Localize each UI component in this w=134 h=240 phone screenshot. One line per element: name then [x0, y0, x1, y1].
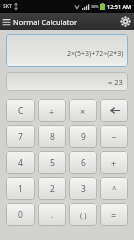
button[interactable]: × [69, 99, 97, 122]
staticText: 12:51 AM [107, 3, 132, 10]
button[interactable]: 9 [69, 125, 97, 148]
staticText: 9 [81, 131, 86, 143]
button[interactable]: 2 [38, 177, 66, 200]
staticText: . [51, 209, 54, 221]
staticText: 38% [91, 4, 99, 9]
button[interactable]: 2×(5+3)+72÷(2*3) [6, 34, 128, 67]
staticText: 6 [81, 157, 86, 169]
button[interactable]: . [38, 203, 66, 226]
staticText: ÷ [49, 105, 55, 117]
staticText: + [111, 157, 117, 169]
staticText: × [80, 105, 86, 117]
button[interactable]: ^ [100, 177, 128, 200]
staticText: Normal Calculator [13, 17, 78, 27]
staticText: 1 [18, 183, 23, 195]
button[interactable]: = [100, 203, 128, 226]
button[interactable]: ( ) [69, 203, 97, 226]
staticText: 2×(5+3)+72÷(2*3) [67, 49, 124, 59]
staticText: 2 [50, 183, 55, 195]
button[interactable]: 3 [69, 177, 97, 200]
button[interactable]: Backspace [100, 99, 128, 122]
staticText: 4 [18, 157, 23, 169]
button[interactable]: = 23 [6, 72, 128, 91]
staticText: 5 [50, 157, 55, 169]
button[interactable]: C [6, 99, 35, 122]
staticText: C [18, 105, 24, 117]
staticText: − [111, 131, 117, 143]
button[interactable]: 4 [6, 151, 35, 174]
button[interactable]: Navigation menu [0, 13, 13, 30]
button[interactable]: − [100, 125, 128, 148]
button[interactable]: Settings [116, 13, 134, 30]
button[interactable]: 0 [6, 203, 35, 226]
staticText: SKT [3, 3, 12, 10]
button[interactable]: 7 [6, 125, 35, 148]
button[interactable]: 6 [69, 151, 97, 174]
staticText: 8 [50, 131, 55, 143]
button[interactable]: + [100, 151, 128, 174]
staticText: = 23 [108, 77, 123, 87]
button[interactable]: ÷ [38, 99, 66, 122]
button[interactable]: 1 [6, 177, 35, 200]
staticText: 3 [81, 183, 86, 195]
staticText: ^ [112, 183, 117, 194]
staticText: 7 [18, 131, 23, 143]
staticText: 0 [18, 209, 23, 221]
button[interactable]: 8 [38, 125, 66, 148]
staticText: = [111, 209, 117, 221]
button[interactable]: 5 [38, 151, 66, 174]
staticText: ( ) [80, 210, 87, 220]
